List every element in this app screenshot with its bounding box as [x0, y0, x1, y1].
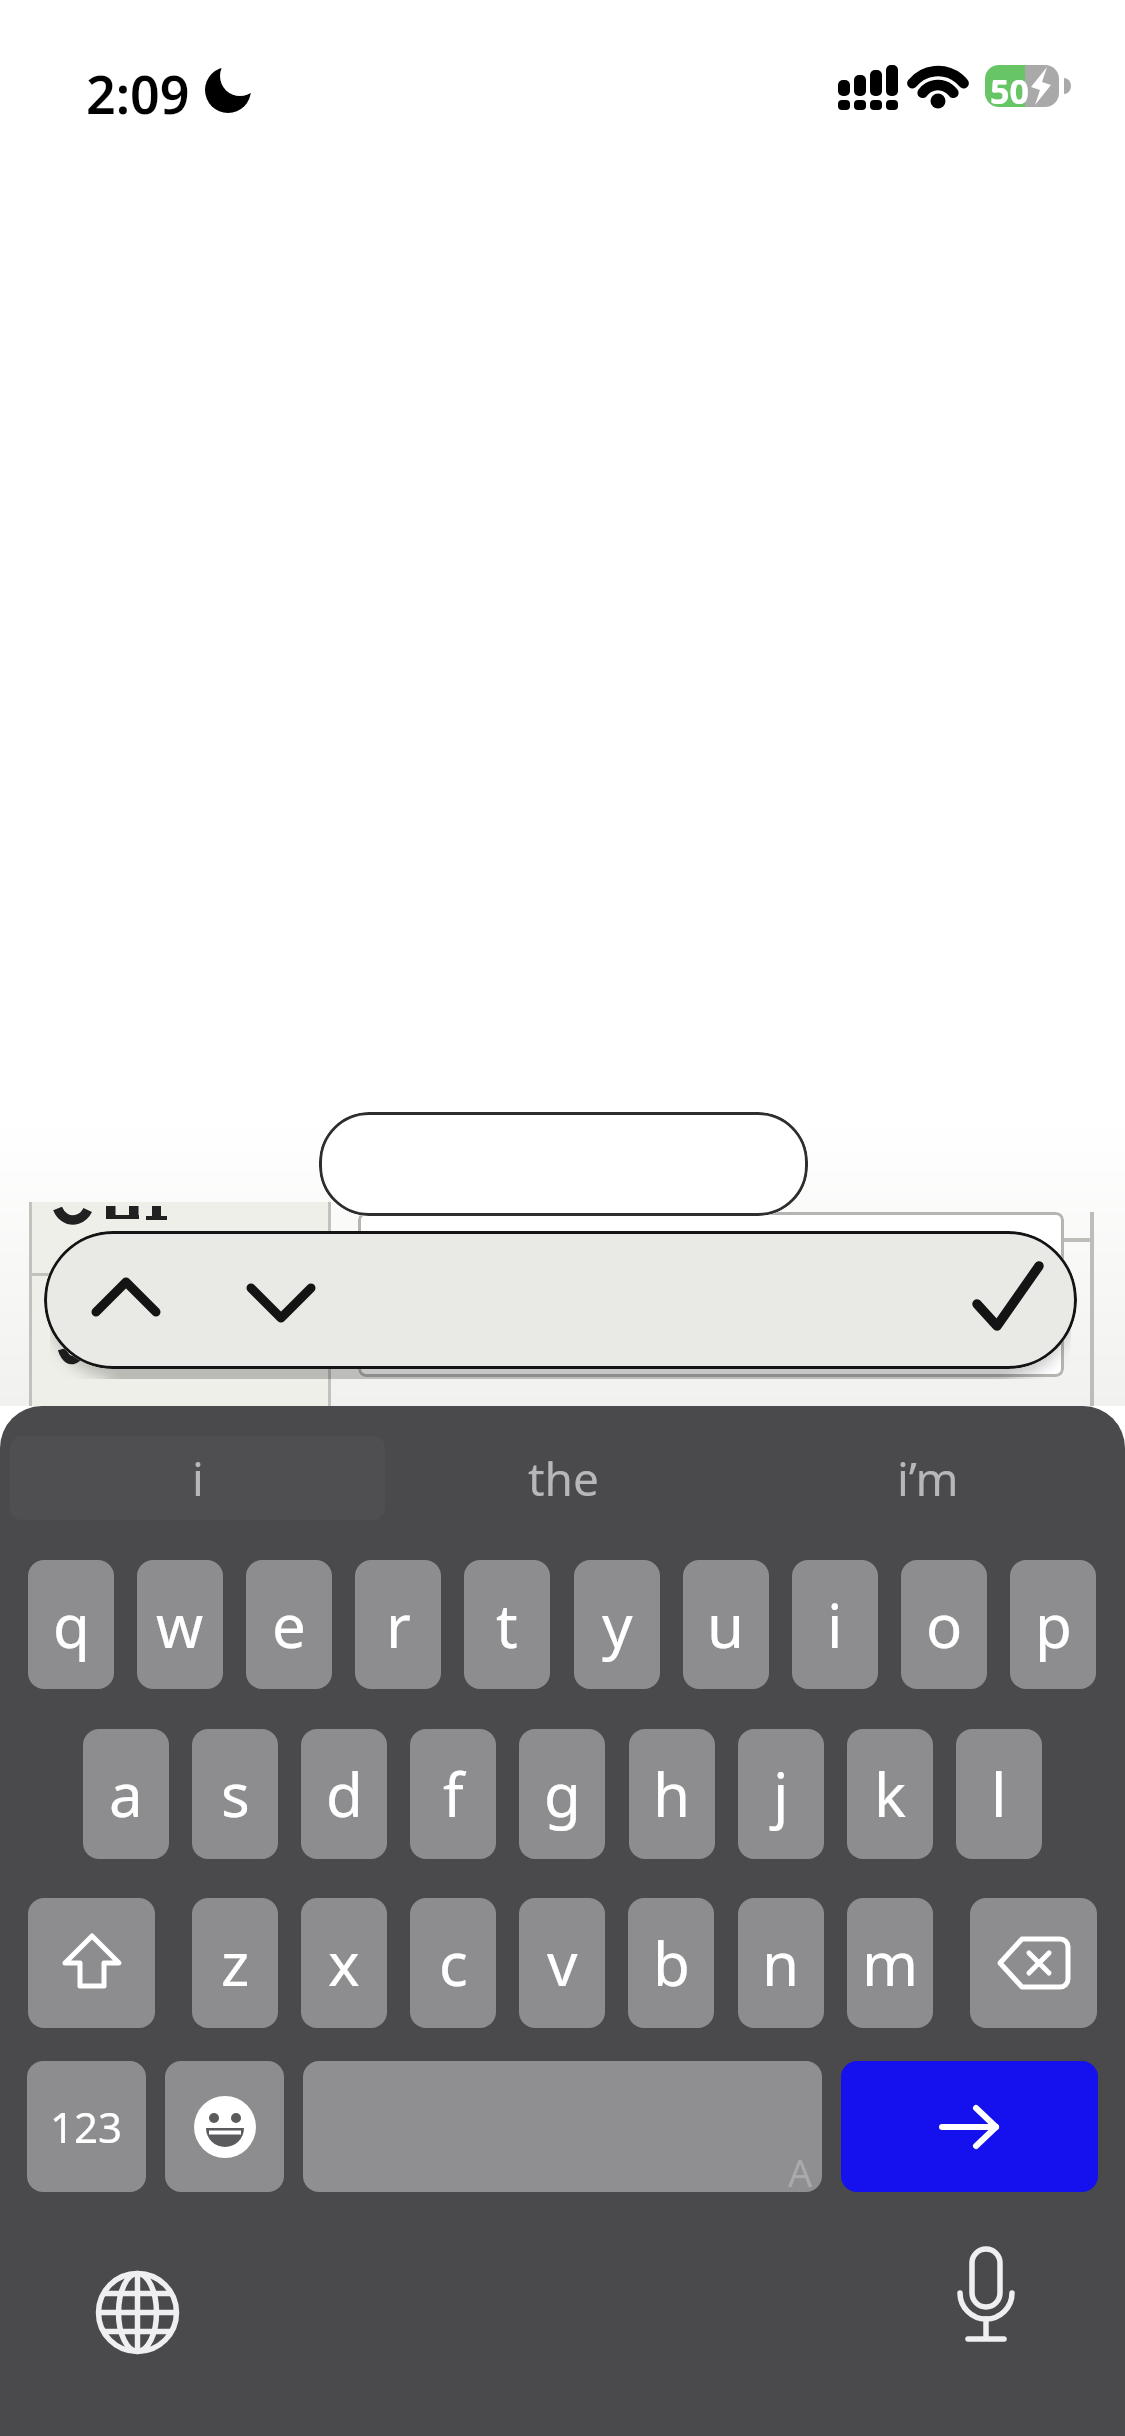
- button[interactable]: 123: [27, 2061, 146, 2192]
- button[interactable]: u: [683, 1560, 769, 1689]
- staticText: i: [827, 1584, 843, 1666]
- button[interactable]: n: [738, 1898, 824, 2028]
- button[interactable]: b: [628, 1898, 714, 2028]
- staticText: i’m: [897, 1447, 959, 1510]
- staticText: s: [221, 1753, 250, 1835]
- button[interactable]: i’m: [741, 1436, 1115, 1520]
- staticText: r: [386, 1584, 411, 1666]
- staticText: 123: [50, 2098, 123, 2155]
- staticText: A: [788, 2146, 813, 2198]
- button[interactable]: w: [137, 1560, 223, 1689]
- button[interactable]: l: [956, 1729, 1042, 1859]
- staticText: y: [602, 1584, 633, 1666]
- staticText: m: [862, 1922, 919, 2004]
- staticText: c: [439, 1922, 468, 2004]
- staticText: j: [773, 1753, 789, 1835]
- button[interactable]: [28, 1898, 155, 2028]
- button[interactable]: [165, 2061, 284, 2192]
- button[interactable]: e: [246, 1560, 332, 1689]
- button[interactable]: q: [28, 1560, 114, 1689]
- button[interactable]: [88, 1262, 164, 1338]
- button[interactable]: d: [301, 1729, 387, 1859]
- button[interactable]: [970, 1898, 1097, 2028]
- button[interactable]: k: [847, 1729, 933, 1859]
- button[interactable]: [243, 1262, 319, 1338]
- button[interactable]: y: [574, 1560, 660, 1689]
- staticText: l: [991, 1753, 1007, 1835]
- button[interactable]: h: [629, 1729, 715, 1859]
- staticText: k: [874, 1753, 907, 1835]
- staticText: 50: [990, 68, 1029, 114]
- staticText: o: [926, 1584, 963, 1666]
- staticText: 2:09: [86, 58, 190, 129]
- staticText: x: [328, 1922, 360, 2004]
- button[interactable]: the: [385, 1436, 741, 1520]
- staticText: t: [496, 1584, 518, 1666]
- button[interactable]: p: [1010, 1560, 1096, 1689]
- staticText: a: [109, 1753, 143, 1835]
- staticText: v: [547, 1922, 578, 2004]
- staticText: n: [762, 1922, 800, 2004]
- staticText: w: [156, 1584, 204, 1666]
- button[interactable]: s: [192, 1729, 278, 1859]
- staticText: g: [544, 1753, 581, 1835]
- button[interactable]: x: [301, 1898, 387, 2028]
- button[interactable]: o: [901, 1560, 987, 1689]
- button[interactable]: [950, 2243, 1022, 2365]
- staticText: u: [707, 1584, 745, 1666]
- button[interactable]: a: [83, 1729, 169, 1859]
- staticText: b: [653, 1922, 690, 2004]
- button[interactable]: t: [464, 1560, 550, 1689]
- button[interactable]: [319, 1112, 808, 1216]
- button[interactable]: r: [355, 1560, 441, 1689]
- staticText: f: [443, 1753, 464, 1835]
- staticText: the: [528, 1447, 599, 1510]
- button[interactable]: c: [410, 1898, 496, 2028]
- button[interactable]: [95, 2270, 180, 2355]
- staticText: z: [221, 1922, 250, 2004]
- button[interactable]: g: [519, 1729, 605, 1859]
- button[interactable]: v: [519, 1898, 605, 2028]
- button[interactable]: f: [410, 1729, 496, 1859]
- button[interactable]: j: [738, 1729, 824, 1859]
- button[interactable]: [969, 1258, 1047, 1338]
- staticText: p: [1035, 1584, 1072, 1666]
- staticText: i: [192, 1447, 204, 1510]
- staticText: d: [326, 1753, 363, 1835]
- button[interactable]: i: [10, 1436, 385, 1520]
- button[interactable]: [841, 2061, 1098, 2192]
- button[interactable]: [303, 2061, 822, 2192]
- button[interactable]: m: [847, 1898, 933, 2028]
- staticText: q: [53, 1584, 90, 1666]
- staticText: h: [653, 1753, 691, 1835]
- button[interactable]: z: [192, 1898, 278, 2028]
- staticText: e: [272, 1584, 306, 1666]
- button[interactable]: i: [792, 1560, 878, 1689]
